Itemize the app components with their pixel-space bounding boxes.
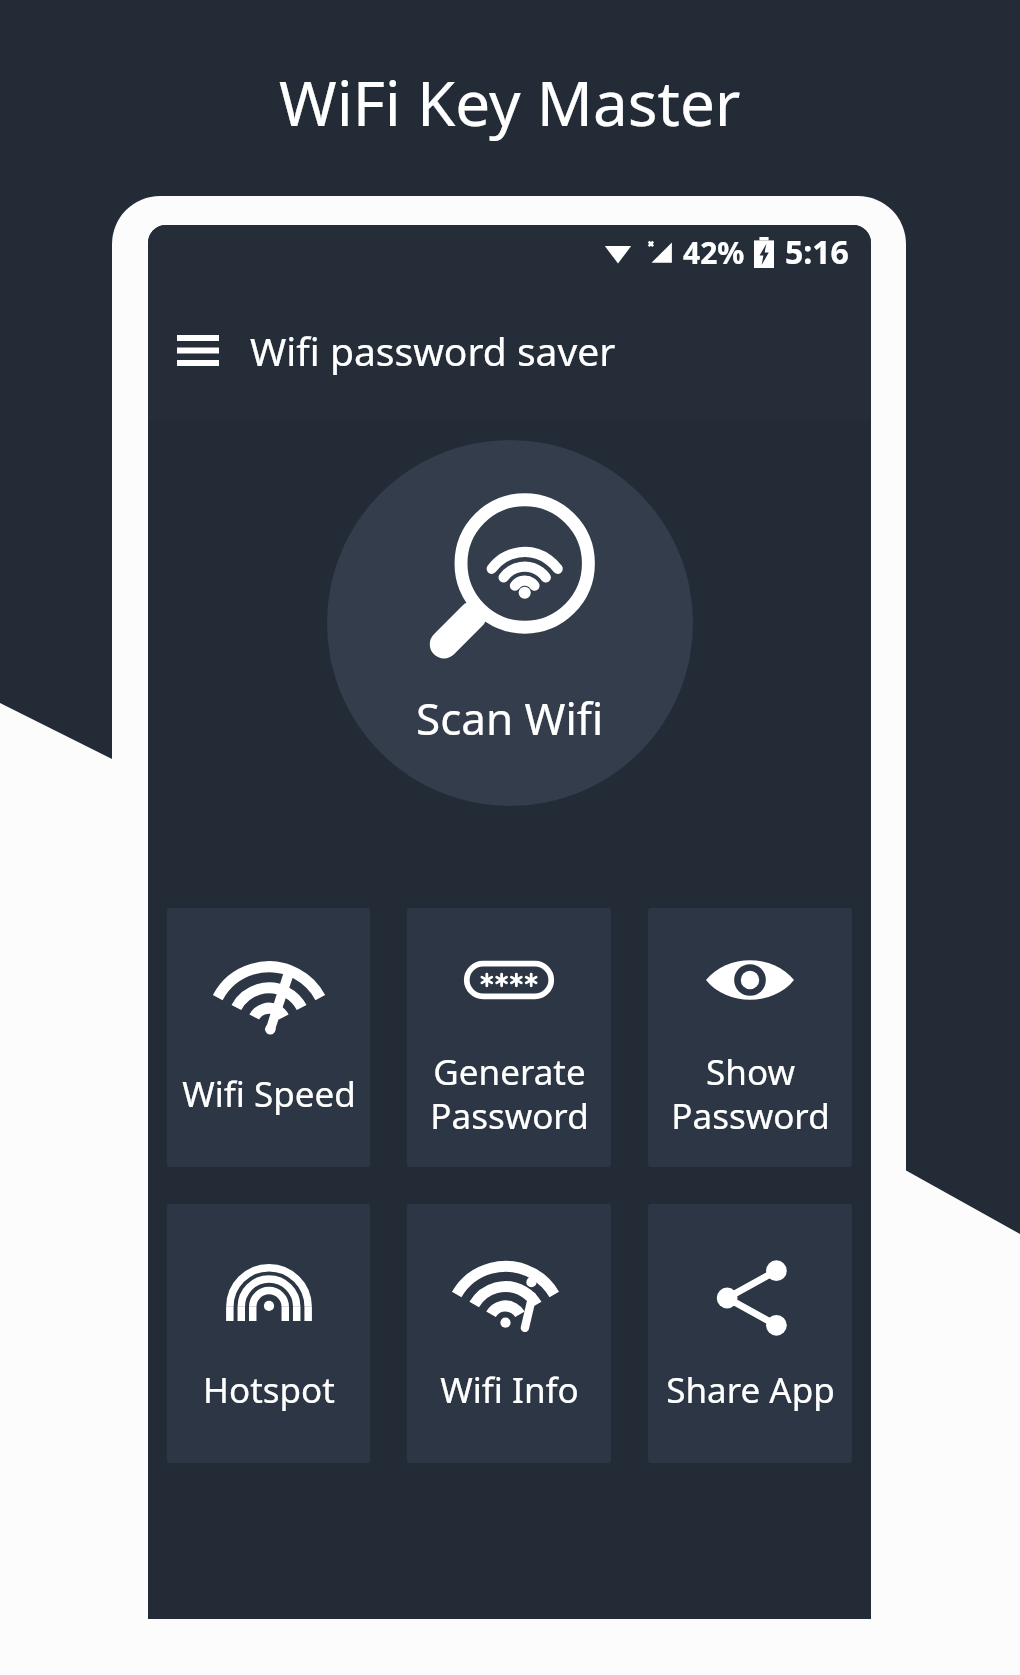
staticText: Scan Wifi xyxy=(416,688,604,748)
button[interactable]: Generate Password xyxy=(407,908,611,1167)
staticText: 42% xyxy=(683,232,745,273)
staticText: Wifi password saver xyxy=(250,324,616,377)
button[interactable]: Wifi Speed xyxy=(167,908,370,1167)
staticText: Hotspot xyxy=(203,1366,335,1414)
staticText: Wifi Info xyxy=(440,1366,579,1414)
staticText: Share App xyxy=(666,1366,835,1414)
staticText: Show Password xyxy=(671,1048,830,1139)
button[interactable]: Hotspot xyxy=(167,1204,370,1463)
button[interactable]: Share App xyxy=(648,1204,852,1463)
button[interactable]: Scan Wifi xyxy=(327,440,693,806)
button[interactable]: Wifi Info xyxy=(407,1204,611,1463)
staticText: WiFi Key Master xyxy=(279,60,741,144)
staticText: Wifi Speed xyxy=(182,1070,356,1118)
staticText: Generate Password xyxy=(430,1048,589,1139)
button[interactable]: Open navigation drawer xyxy=(168,320,228,380)
staticText: 5:16 xyxy=(785,230,849,274)
button[interactable]: Show Password xyxy=(648,908,852,1167)
